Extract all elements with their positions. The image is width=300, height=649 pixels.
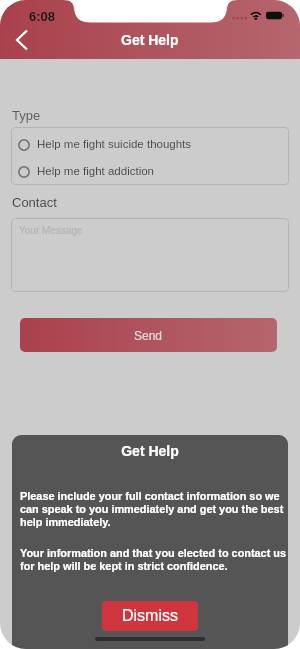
staticText: Type	[12, 108, 41, 123]
staticText: Please include your full contact informa…	[20, 490, 286, 528]
staticText: Contact	[12, 195, 57, 210]
button[interactable]: Your Message	[11, 218, 289, 292]
staticText: 6:08	[29, 9, 56, 24]
staticText: Get Help	[12, 443, 288, 459]
staticText: Send	[134, 329, 163, 342]
staticText: Help me fight addiction	[37, 165, 154, 178]
staticText: Your Message	[19, 225, 83, 236]
button[interactable]: Dismiss	[102, 601, 198, 631]
button[interactable]: Back	[4, 25, 40, 59]
staticText: Get Help	[121, 32, 179, 48]
staticText: Dismiss	[122, 607, 178, 625]
button[interactable]: Send	[20, 318, 277, 352]
button[interactable]: Help me fight addiction	[11, 158, 289, 185]
staticText: Help me fight suicide thoughts	[37, 138, 192, 151]
staticText: Your information and that you elected to…	[20, 547, 288, 572]
button[interactable]: Help me fight suicide thoughts	[11, 131, 289, 158]
